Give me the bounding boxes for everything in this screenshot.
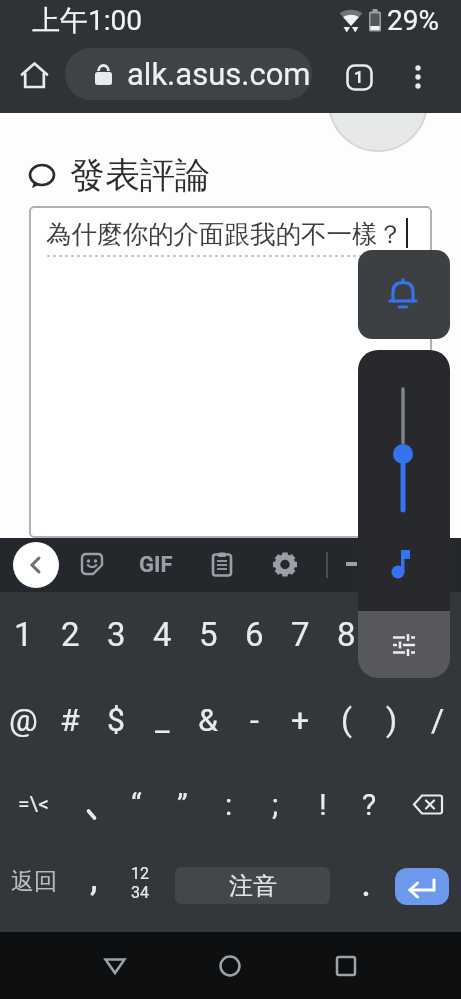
staticText: ! bbox=[319, 787, 327, 822]
button[interactable]: 2 bbox=[47, 592, 93, 677]
button[interactable]: + bbox=[277, 677, 323, 762]
button[interactable]: ; bbox=[252, 762, 299, 847]
button[interactable]: 4 bbox=[139, 592, 185, 677]
staticText: + bbox=[291, 701, 310, 739]
button[interactable] bbox=[17, 58, 52, 93]
staticText: @ bbox=[9, 701, 38, 739]
staticText: # bbox=[60, 701, 80, 739]
button[interactable]: ! bbox=[299, 762, 346, 847]
button[interactable]: - bbox=[231, 677, 277, 762]
staticText: : bbox=[225, 787, 233, 822]
button[interactable] bbox=[331, 951, 361, 981]
button[interactable]: ( bbox=[323, 677, 369, 762]
staticText: =\< bbox=[18, 792, 49, 817]
button[interactable]: 6 bbox=[231, 592, 277, 677]
button[interactable]: ” bbox=[159, 762, 205, 847]
button[interactable] bbox=[388, 548, 420, 580]
staticText: / bbox=[431, 701, 445, 739]
button[interactable] bbox=[271, 551, 299, 579]
staticText: 1 bbox=[14, 615, 33, 654]
button[interactable] bbox=[215, 951, 245, 981]
button[interactable]: 1 bbox=[0, 592, 47, 677]
button[interactable] bbox=[395, 868, 449, 905]
staticText: alk.asus.com bbox=[127, 56, 311, 92]
staticText: 2 bbox=[61, 615, 80, 654]
staticText: 7 bbox=[291, 615, 310, 654]
button[interactable]: . bbox=[341, 847, 392, 932]
button[interactable] bbox=[13, 542, 59, 588]
button[interactable]: @ bbox=[0, 677, 47, 762]
button[interactable] bbox=[358, 611, 450, 678]
staticText: 9 bbox=[383, 615, 402, 654]
button[interactable] bbox=[358, 250, 450, 339]
staticText: 12 bbox=[131, 864, 149, 883]
staticText: . bbox=[361, 860, 372, 906]
button[interactable]: 注音 bbox=[175, 867, 330, 904]
button[interactable] bbox=[208, 551, 236, 579]
staticText: 3 bbox=[107, 615, 126, 654]
staticText: 為什麼你的介面跟我的不一樣？ bbox=[46, 218, 403, 250]
button[interactable] bbox=[78, 551, 106, 579]
staticText: , bbox=[90, 854, 98, 900]
button[interactable]: ) bbox=[369, 677, 415, 762]
staticText: “ bbox=[131, 787, 142, 822]
staticText: 6 bbox=[245, 615, 264, 654]
button[interactable]: 8 bbox=[323, 592, 369, 677]
staticText: 上午1:00 bbox=[32, 3, 142, 38]
staticText: & bbox=[198, 701, 218, 739]
staticText: ; bbox=[272, 787, 279, 822]
button[interactable]: alk.asus.com bbox=[65, 48, 312, 100]
staticText: 發表評論 bbox=[70, 153, 210, 197]
staticText: ” bbox=[177, 787, 188, 822]
button[interactable]: : bbox=[205, 762, 252, 847]
staticText: 返回 bbox=[11, 867, 57, 896]
button[interactable]: 0 bbox=[415, 592, 461, 677]
staticText: 5 bbox=[199, 615, 218, 654]
staticText: 1 bbox=[354, 68, 364, 87]
staticText: 8 bbox=[337, 615, 356, 654]
staticText: _ bbox=[155, 701, 170, 739]
button[interactable]: 3 bbox=[93, 592, 139, 677]
staticText: ? bbox=[362, 787, 377, 822]
staticText: 4 bbox=[153, 615, 172, 654]
button[interactable]: $ bbox=[93, 677, 139, 762]
button[interactable]: 1 bbox=[340, 58, 378, 96]
staticText: 29% bbox=[387, 4, 439, 37]
staticText: GIF bbox=[139, 552, 173, 578]
staticText: - bbox=[250, 701, 259, 739]
button[interactable]: “ bbox=[113, 762, 159, 847]
button[interactable]: GIF bbox=[133, 551, 179, 579]
staticText: 34 bbox=[131, 883, 149, 902]
button[interactable]: 5 bbox=[185, 592, 231, 677]
staticText: $ bbox=[107, 701, 125, 739]
button[interactable]: , bbox=[68, 847, 116, 932]
button[interactable] bbox=[399, 58, 437, 96]
button[interactable]: / bbox=[415, 677, 461, 762]
button[interactable]: _ bbox=[139, 677, 185, 762]
button[interactable]: 12 bbox=[116, 847, 163, 932]
staticText: ) bbox=[386, 701, 398, 739]
button[interactable]: =\< bbox=[0, 762, 67, 847]
button[interactable]: 發表評論 bbox=[28, 153, 210, 197]
staticText: 注音 bbox=[229, 871, 277, 901]
button[interactable]: # bbox=[47, 677, 93, 762]
button[interactable]: 為什麼你的介面跟我的不一樣？ bbox=[29, 206, 432, 538]
button[interactable] bbox=[100, 951, 130, 981]
button[interactable]: & bbox=[185, 677, 231, 762]
button[interactable] bbox=[393, 762, 461, 847]
button[interactable]: 9 bbox=[369, 592, 415, 677]
button[interactable]: 7 bbox=[277, 592, 323, 677]
staticText: ( bbox=[341, 701, 352, 739]
button[interactable]: ? bbox=[346, 762, 393, 847]
button[interactable]: 返回 bbox=[0, 847, 68, 932]
button[interactable] bbox=[67, 762, 113, 847]
